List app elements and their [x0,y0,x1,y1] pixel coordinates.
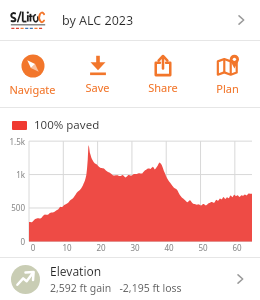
staticText: 1k [4,169,25,180]
staticText: Plan [216,81,239,96]
button[interactable]: Save [65,50,130,99]
staticText: 30 [126,242,144,253]
button[interactable]: by ALC 2023 [0,0,260,40]
staticText: 0 [4,236,25,247]
staticText: 100% paved [34,117,100,133]
staticText: 40 [160,242,178,253]
staticText: Save [85,80,110,95]
staticText: 500 [4,202,25,213]
staticText: 0 [24,242,42,253]
button[interactable]: Plan [195,50,260,100]
staticText: Elevation [50,263,102,279]
staticText: by ALC 2023 [62,12,134,29]
staticText: 20 [92,242,110,253]
staticText: 2,592 ft gain -2,195 ft loss [50,281,182,295]
staticText: Navigate [9,82,56,97]
button[interactable]: Navigate [0,50,65,101]
staticText: Share [148,80,178,95]
staticText: 60 [228,242,246,253]
staticText: 10 [58,242,76,253]
staticText: 50 [194,242,212,253]
button[interactable]: Elevation [0,258,260,300]
button[interactable]: Share [130,50,195,99]
staticText: 1.5k [4,136,25,147]
